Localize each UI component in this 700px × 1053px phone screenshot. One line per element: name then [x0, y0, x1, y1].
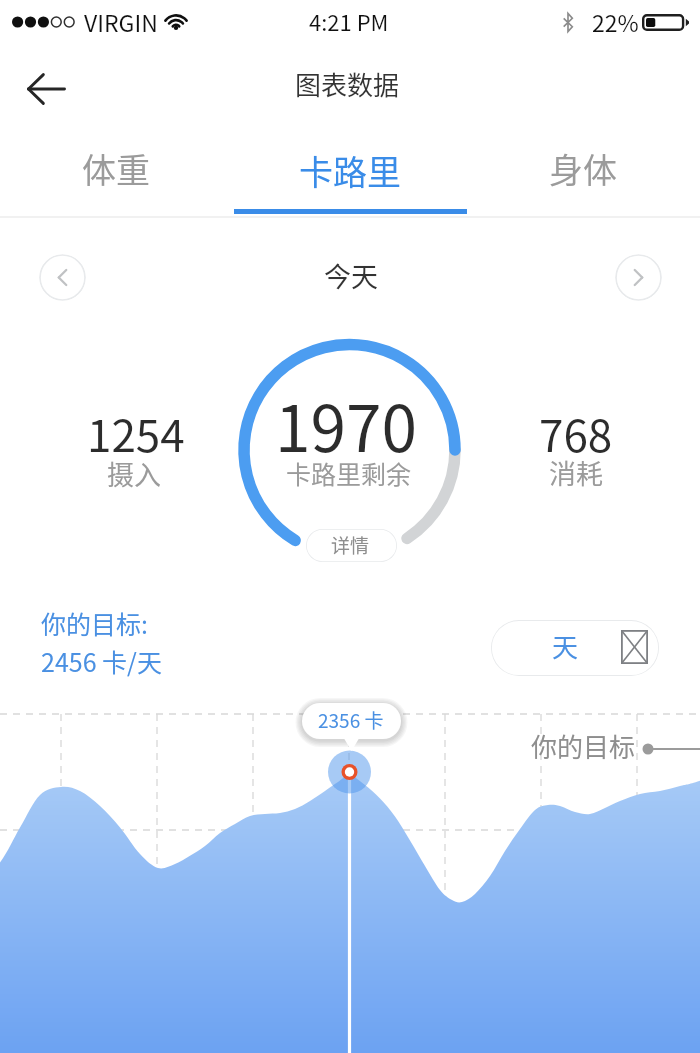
staticText: 22%	[592, 5, 639, 38]
button[interactable]	[491, 620, 659, 676]
staticText: 详情	[331, 531, 370, 559]
staticText: 消耗	[549, 453, 603, 492]
staticText: 你的目标	[531, 727, 636, 765]
button[interactable]	[306, 529, 397, 562]
button[interactable]: Next day	[615, 254, 662, 301]
staticText: 卡路里	[299, 146, 401, 195]
button[interactable]: 身体	[467, 132, 700, 218]
staticText: 身体	[549, 144, 617, 193]
button[interactable]: 体重	[0, 132, 233, 218]
staticText: 天	[552, 627, 579, 665]
staticText: 768	[539, 401, 613, 465]
button[interactable]: 卡路里	[233, 132, 467, 218]
staticText: 你的目标:	[41, 605, 148, 641]
staticText: 摄入	[107, 454, 161, 493]
staticText: 2356 卡	[318, 706, 384, 734]
staticText: 卡路里剩余	[286, 455, 412, 491]
staticText: 体重	[82, 144, 150, 193]
staticText: 4:21 PM	[309, 5, 389, 37]
staticText: 2456 卡/天	[41, 643, 162, 679]
staticText: 今天	[324, 256, 378, 295]
staticText: 1970	[275, 378, 418, 471]
staticText: VIRGIN	[84, 5, 158, 38]
staticText: 图表数据	[295, 65, 400, 103]
button[interactable]: Back	[8, 59, 84, 119]
button[interactable]: Previous day	[39, 254, 86, 301]
staticText: 1254	[87, 401, 185, 465]
